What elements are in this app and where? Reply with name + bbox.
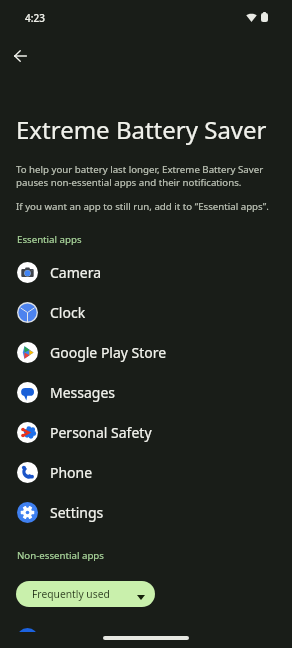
button[interactable]: Frequently used (16, 581, 155, 607)
staticText: Settings (50, 503, 104, 522)
staticText: Clock (50, 303, 86, 322)
button[interactable]: Messages (0, 372, 292, 412)
staticText: 4:23 (25, 11, 45, 25)
staticText: Personal Safety (50, 423, 152, 442)
staticText: Non-essential apps (17, 549, 104, 562)
staticText: To help your battery last longer, Extrem… (16, 163, 278, 189)
staticText: Phone (50, 463, 93, 482)
staticText: Messages (50, 383, 116, 402)
staticText: If you want an app to still run, add it … (16, 200, 269, 213)
staticText: Camera (50, 263, 102, 282)
button[interactable]: Settings (0, 492, 292, 532)
staticText: Essential apps (17, 233, 82, 246)
button[interactable]: Back (2, 38, 38, 74)
button[interactable]: Google Play Store (0, 332, 292, 372)
button[interactable]: Camera (0, 252, 292, 292)
staticText: Frequently used (32, 587, 110, 601)
button[interactable]: Phone (0, 452, 292, 492)
button[interactable]: Clock (0, 292, 292, 332)
button[interactable]: Personal Safety (0, 412, 292, 452)
staticText: Extreme Battery Saver (16, 113, 267, 146)
staticText: Google Play Store (50, 343, 167, 362)
